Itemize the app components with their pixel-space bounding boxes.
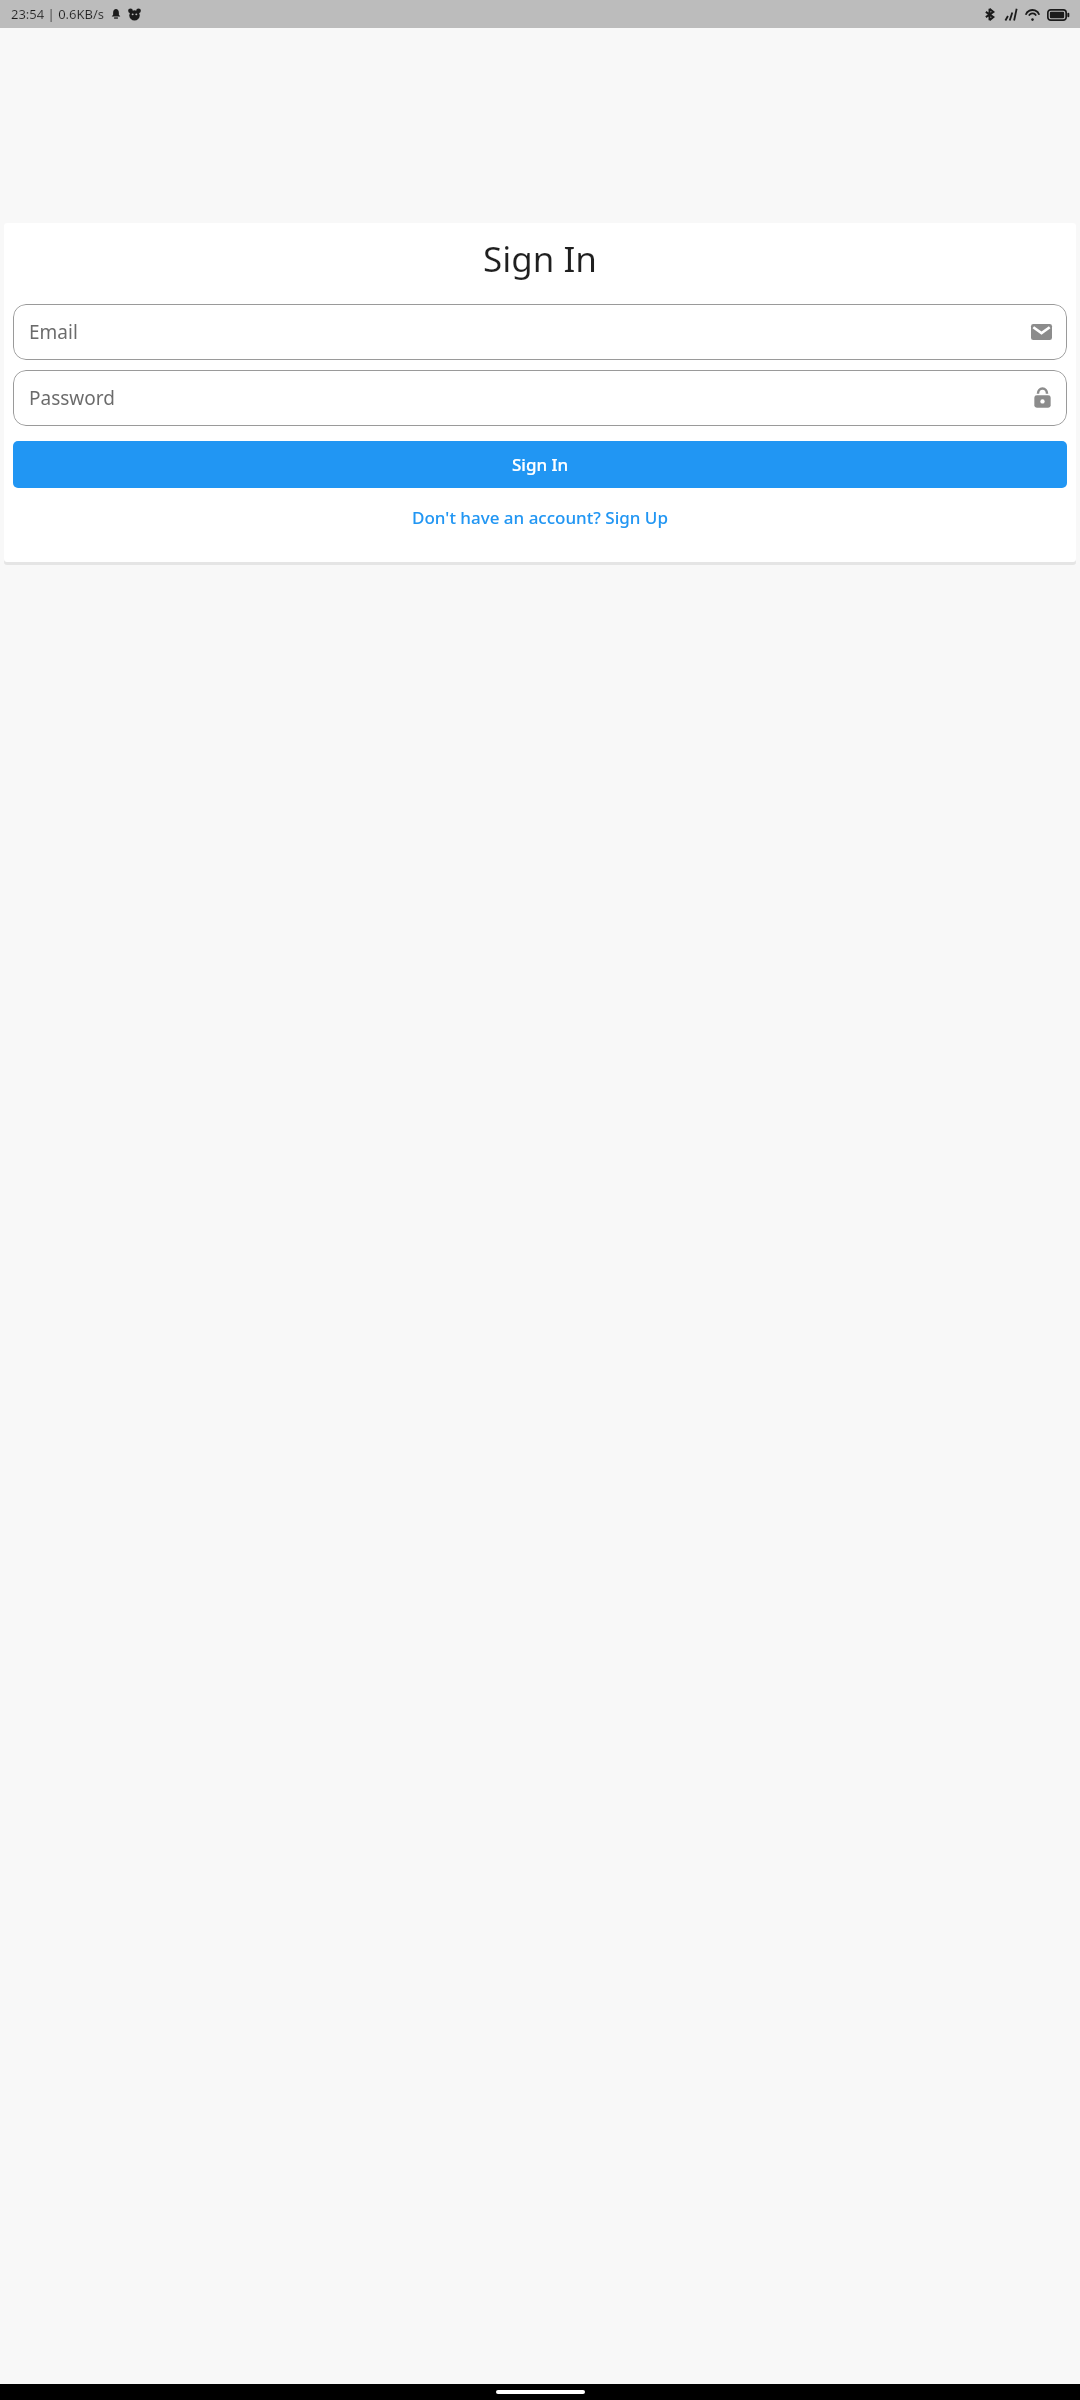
button[interactable]: Sign In <box>13 441 1067 488</box>
button[interactable]: Password <box>13 370 1067 426</box>
staticText: Password <box>29 385 1033 411</box>
other: Password <box>1033 387 1052 409</box>
other: Email <box>1031 324 1052 340</box>
button[interactable]: Email <box>13 304 1067 360</box>
staticText: 23:54 | 0.6KB/s <box>11 5 105 23</box>
staticText: Sign In <box>4 235 1076 283</box>
staticText: Email <box>29 319 1031 345</box>
button[interactable]: Don't have an account? Sign Up <box>4 499 1076 535</box>
staticText: Don't have an account? Sign Up <box>412 506 668 529</box>
staticText: Sign In <box>512 453 569 476</box>
